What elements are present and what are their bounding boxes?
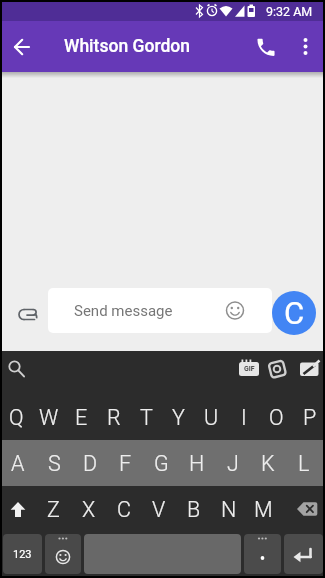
staticText: F xyxy=(119,451,132,476)
staticText: K xyxy=(261,451,275,476)
staticText: S xyxy=(48,451,61,476)
staticText: Send message xyxy=(74,302,173,320)
staticText: B xyxy=(187,497,201,522)
staticText: Y xyxy=(172,405,185,430)
staticText: V xyxy=(152,497,166,522)
staticText: C xyxy=(284,295,305,331)
staticText: W xyxy=(39,405,59,430)
staticText: T xyxy=(140,405,153,430)
staticText: Whitson Gordon xyxy=(64,36,190,57)
staticText: E xyxy=(75,405,88,430)
staticText: J xyxy=(227,451,239,476)
staticText: I xyxy=(241,405,247,430)
staticText: C xyxy=(117,497,131,522)
staticText: 9:32 AM xyxy=(266,4,313,19)
staticText: Z xyxy=(47,497,60,522)
staticText: O xyxy=(269,405,284,430)
staticText: R xyxy=(107,405,121,430)
staticText: A xyxy=(11,451,25,476)
staticText: P xyxy=(303,405,317,430)
staticText: X xyxy=(82,497,96,522)
staticText: U xyxy=(204,405,219,430)
staticText: GIF xyxy=(244,365,255,373)
staticText: L xyxy=(298,451,310,476)
staticText: Q xyxy=(9,405,24,430)
staticText: D xyxy=(83,451,98,476)
staticText: 123 xyxy=(13,548,32,561)
staticText: M xyxy=(254,497,273,522)
staticText: N xyxy=(221,497,237,522)
staticText: G xyxy=(154,451,169,476)
staticText: H xyxy=(189,451,205,476)
